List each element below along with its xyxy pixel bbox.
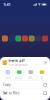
staticText: Invoice.pdf [8, 59, 24, 62]
button[interactable]: Copy [0, 81, 50, 89]
button[interactable]: Messages [14, 68, 25, 79]
button[interactable]: Files [36, 68, 48, 79]
staticText: Messages [15, 77, 23, 79]
button[interactable]: AirDrop [2, 68, 14, 79]
staticText: PDF Document [8, 63, 28, 66]
staticText: Files [41, 77, 44, 79]
staticText: 9:41 [4, 2, 11, 7]
staticText: Copy [3, 83, 10, 86]
staticText: Save to Files [3, 91, 19, 95]
staticText: ✕ [44, 61, 46, 64]
button[interactable]: Close [43, 61, 47, 65]
staticText: AirDrop [5, 77, 11, 79]
staticText: Photos [28, 77, 33, 79]
button[interactable]: Save to Files [0, 89, 50, 97]
button[interactable]: Photos [25, 68, 36, 79]
